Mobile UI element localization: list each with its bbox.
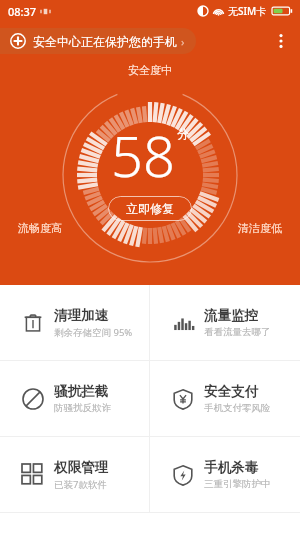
staticText: 58 bbox=[111, 117, 175, 193]
staticText: 安全中心正在保护您的手机 bbox=[33, 34, 177, 49]
button[interactable]: 权限管理 bbox=[0, 437, 149, 512]
staticText: 安全支付 bbox=[204, 383, 258, 400]
staticText: 清洁度低 bbox=[238, 221, 282, 235]
staticText: 分 bbox=[177, 126, 189, 141]
button[interactable]: 清理加速 bbox=[0, 285, 149, 360]
staticText: 08:37 bbox=[8, 4, 37, 19]
staticText: 流量监控 bbox=[204, 307, 258, 324]
staticText: 流畅度高 bbox=[18, 221, 62, 235]
staticText: 已装7款软件 bbox=[54, 478, 107, 491]
staticText: 无SIM卡 bbox=[228, 4, 267, 18]
button[interactable]: 安全中心正在保护您的手机 bbox=[0, 28, 196, 54]
staticText: › bbox=[181, 34, 185, 49]
button[interactable]: 手机杀毒 bbox=[150, 437, 300, 512]
button[interactable]: 骚扰拦截 bbox=[0, 361, 149, 436]
button[interactable]: 立即修复 bbox=[108, 196, 192, 221]
staticText: 安全度中 bbox=[128, 63, 172, 77]
staticText: 三重引擎防护中 bbox=[204, 478, 271, 490]
staticText: 手机支付零风险 bbox=[204, 402, 271, 414]
staticText: 权限管理 bbox=[54, 459, 108, 476]
button[interactable]: More options bbox=[268, 28, 294, 54]
staticText: 清理加速 bbox=[54, 307, 108, 324]
staticText: 骚扰拦截 bbox=[54, 383, 108, 400]
staticText: 剩余存储空间 95% bbox=[54, 326, 133, 339]
button[interactable]: 安全支付 bbox=[150, 361, 300, 436]
staticText: 防骚扰反欺诈 bbox=[54, 402, 111, 414]
staticText: 立即修复 bbox=[126, 201, 174, 216]
staticText: 手机杀毒 bbox=[204, 459, 258, 476]
staticText: 看看流量去哪了 bbox=[204, 326, 271, 338]
button[interactable]: 流量监控 bbox=[150, 285, 300, 360]
